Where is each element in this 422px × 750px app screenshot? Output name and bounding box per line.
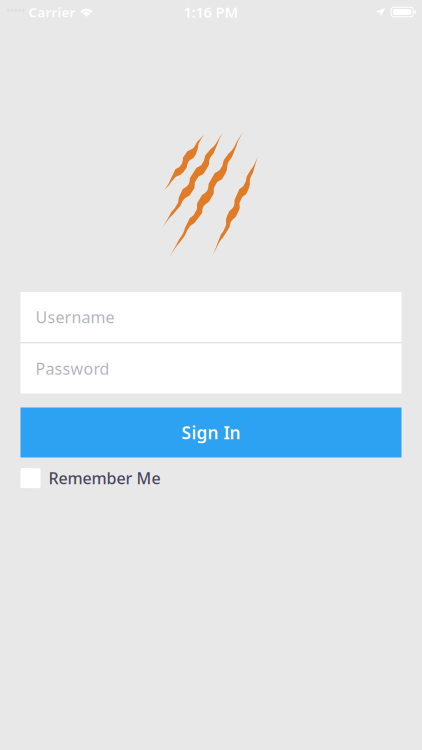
staticText: Remember Me (48, 467, 160, 489)
staticText: Sign In (181, 421, 240, 444)
staticText: Password (35, 358, 109, 379)
button[interactable]: Username (20, 292, 401, 342)
button[interactable]: Remember Me (20, 467, 401, 489)
button[interactable]: Sign In (20, 407, 401, 457)
button[interactable]: Password (20, 343, 401, 393)
staticText: Carrier (29, 3, 76, 21)
staticText: Username (35, 306, 114, 328)
staticText: 1:16 PM (183, 2, 238, 22)
